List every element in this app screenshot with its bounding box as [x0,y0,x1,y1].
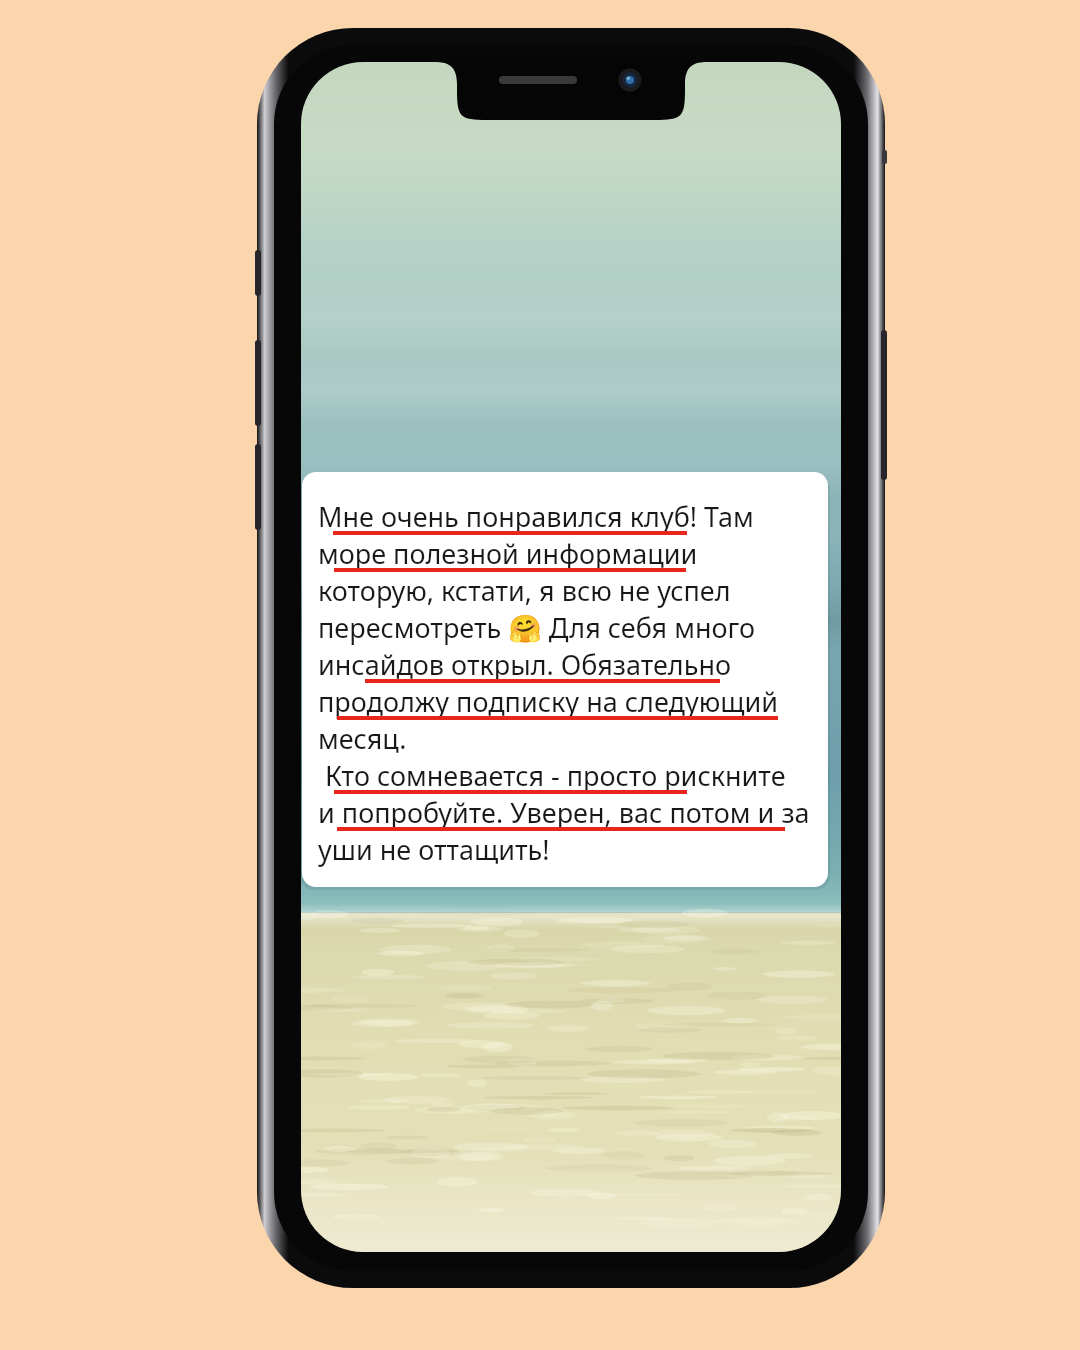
staticText: инсайдов открыл. Обязательно [318,646,732,683]
staticText: месяц. [318,720,407,757]
button[interactable]: Message from club member [302,472,828,887]
staticText: море полезной информации [318,535,698,572]
staticText: продолжу подписку на следующий [318,683,778,720]
staticText: уши не оттащить! [318,831,550,868]
staticText: которую, кстати, я всю не успел [318,572,731,609]
staticText: Мне очень понравился клуб! Там [318,498,754,535]
staticText: и попробуйте. Уверен, вас потом и за [318,794,810,831]
staticText: Кто сомневается - просто рискните [318,757,786,794]
staticText: пересмотреть 🤗 Для себя много [318,609,756,646]
